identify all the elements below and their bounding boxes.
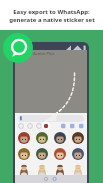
staticText: Avatar Plus — [33, 51, 55, 56]
staticText: generate a native sticker set — [9, 16, 95, 24]
staticText: Easy export to WhatsApp: — [13, 8, 90, 16]
button[interactable]: WhatsApp — [3, 33, 33, 63]
other: Sticker grid — [15, 113, 87, 183]
